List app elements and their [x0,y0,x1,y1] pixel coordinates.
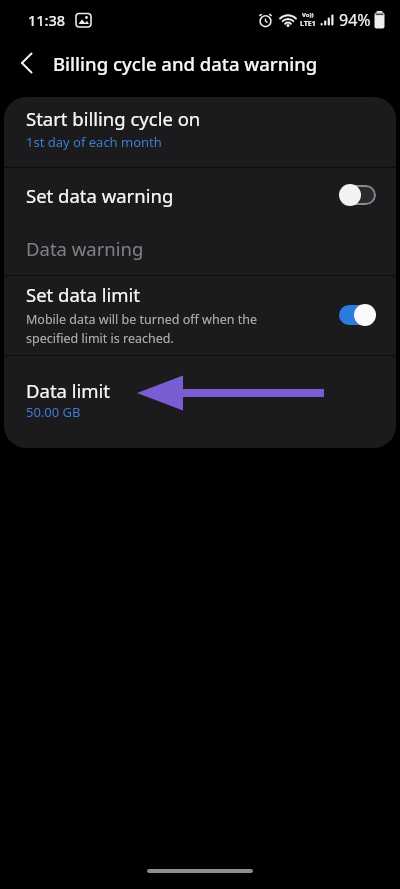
button[interactable] [0,40,48,88]
staticText: Vo)) [302,11,314,19]
staticText: specified limit is reached. [26,330,174,347]
staticText: Mobile data will be turned off when the [26,311,257,328]
staticText: LTE1 [300,19,316,29]
staticText: Set data limit [26,282,140,307]
staticText: 11:38 [28,10,66,30]
staticText: Data warning [26,236,144,261]
staticText: Billing cycle and data warning [53,51,318,76]
staticText: 1st day of each month [26,133,162,151]
button[interactable] [339,304,376,326]
staticText: Data limit [26,378,111,403]
button[interactable]: Data limit [4,356,396,448]
staticText: Set data warning [26,183,174,208]
button[interactable]: Start billing cycle on [4,97,396,167]
button[interactable]: Set data warning [4,168,396,222]
button[interactable] [147,869,253,873]
staticText: 94% [339,9,371,31]
staticText: Start billing cycle on [26,106,201,131]
button[interactable]: Data warning [4,222,396,275]
button[interactable]: Set data limit [4,276,396,355]
staticText: 50.00 GB [26,403,81,421]
button[interactable] [339,184,376,206]
